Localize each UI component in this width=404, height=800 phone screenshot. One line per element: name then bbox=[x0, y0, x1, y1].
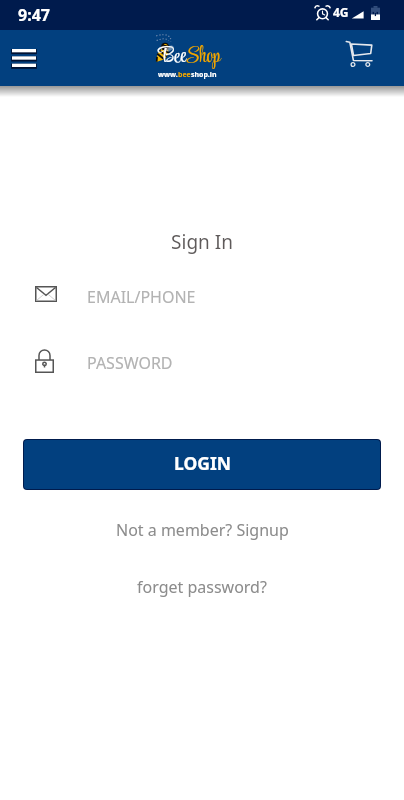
staticText: Shop bbox=[186, 41, 221, 73]
button[interactable]: Open navigation menu bbox=[0, 36, 48, 80]
staticText: Sign In bbox=[0, 229, 404, 255]
button[interactable]: LOGIN bbox=[24, 440, 380, 489]
staticText: bee bbox=[178, 70, 191, 80]
staticText: www. bbox=[158, 70, 178, 80]
staticText: Bee bbox=[159, 41, 186, 73]
staticText: shop.in bbox=[191, 70, 217, 80]
staticText: forget password? bbox=[137, 576, 267, 598]
staticText: PASSWORD bbox=[87, 352, 173, 374]
staticText: LOGIN bbox=[174, 451, 231, 475]
button[interactable]: Not a member? Signup bbox=[0, 514, 404, 546]
button[interactable]: forget password? bbox=[0, 571, 404, 603]
staticText: 9:47 bbox=[18, 4, 50, 26]
staticText: Not a member? Signup bbox=[116, 519, 289, 541]
staticText: 4G bbox=[333, 4, 349, 20]
staticText: EMAIL/PHONE bbox=[87, 286, 196, 308]
button[interactable]: Shopping cart bbox=[336, 30, 382, 78]
